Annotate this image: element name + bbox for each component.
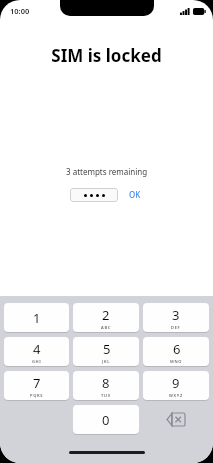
button[interactable]: 7 — [4, 371, 69, 400]
staticText: 6 — [173, 340, 181, 358]
staticText: OK — [129, 189, 141, 200]
button[interactable]: Delete — [143, 405, 209, 434]
staticText: 3 — [172, 306, 180, 324]
staticText: 2 — [102, 306, 110, 324]
button[interactable]: 5 — [73, 337, 139, 366]
staticText: 10:00 — [10, 6, 30, 16]
staticText: 5 — [103, 340, 111, 358]
button[interactable]: 8 — [73, 371, 139, 400]
button[interactable]: 9 — [143, 371, 209, 400]
staticText: GHI — [32, 359, 42, 364]
staticText: DEF — [171, 325, 181, 330]
staticText: TUV — [101, 393, 111, 398]
staticText: 8 — [102, 374, 110, 392]
staticText: PQRS — [30, 393, 44, 398]
staticText: 3 attempts remaining — [66, 166, 148, 177]
staticText: MNO — [170, 359, 183, 364]
staticText: 1 — [33, 309, 41, 327]
staticText: SIM is locked — [51, 44, 162, 67]
button[interactable]: 1 — [4, 303, 69, 332]
staticText: JKL — [102, 359, 111, 364]
button[interactable]: OK — [127, 187, 143, 202]
staticText: WXYZ — [169, 393, 183, 398]
button[interactable]: 4 — [4, 337, 69, 366]
staticText: 0 — [102, 411, 110, 429]
button[interactable] — [70, 188, 118, 202]
button[interactable]: 0 — [73, 405, 139, 434]
button[interactable]: 2 — [73, 303, 139, 332]
staticText: 7 — [33, 374, 41, 392]
button[interactable]: 6 — [143, 337, 209, 366]
staticText: ABC — [101, 325, 111, 330]
button[interactable]: 3 — [143, 303, 209, 332]
staticText: 9 — [172, 374, 180, 392]
staticText: 4 — [33, 340, 41, 358]
